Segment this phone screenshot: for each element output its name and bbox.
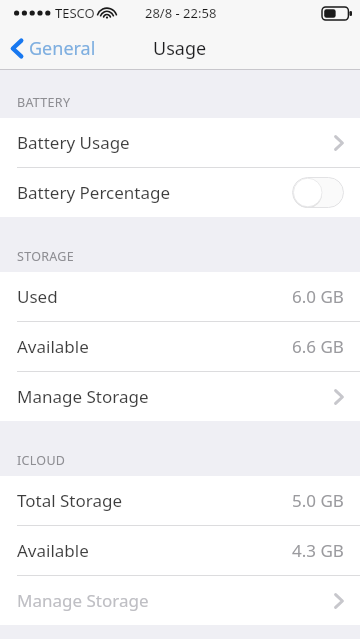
- button[interactable]: Battery Usage: [0, 118, 360, 167]
- button[interactable]: Available: [0, 526, 360, 575]
- button[interactable]: Battery Percentage: [0, 168, 360, 217]
- staticText: 28/8 - 22:58: [145, 4, 217, 22]
- staticText: Manage Storage: [17, 385, 149, 408]
- staticText: General: [29, 36, 96, 61]
- staticText: Available: [17, 335, 89, 358]
- staticText: Battery Usage: [17, 131, 130, 154]
- other: Battery Percentage toggle, off: [292, 177, 344, 208]
- staticText: Battery Percentage: [17, 181, 171, 204]
- button[interactable]: Available: [0, 322, 360, 371]
- button[interactable]: Manage Storage: [0, 576, 360, 625]
- staticText: ICLOUD: [17, 452, 66, 469]
- button[interactable]: General: [0, 30, 108, 67]
- staticText: Available: [17, 539, 89, 562]
- staticText: 6.6 GB: [292, 335, 344, 358]
- staticText: Usage: [153, 36, 207, 61]
- staticText: Manage Storage: [17, 589, 149, 612]
- staticText: 6.0 GB: [292, 285, 344, 308]
- staticText: TESCO: [55, 4, 95, 22]
- staticText: BATTERY: [17, 94, 71, 111]
- staticText: Used: [17, 285, 58, 308]
- button[interactable]: Total Storage: [0, 476, 360, 525]
- button[interactable]: Used: [0, 272, 360, 321]
- staticText: 5.0 GB: [292, 489, 344, 512]
- staticText: Total Storage: [17, 489, 123, 512]
- staticText: 4.3 GB: [292, 539, 344, 562]
- staticText: STORAGE: [17, 248, 74, 265]
- button[interactable]: Manage Storage: [0, 372, 360, 421]
